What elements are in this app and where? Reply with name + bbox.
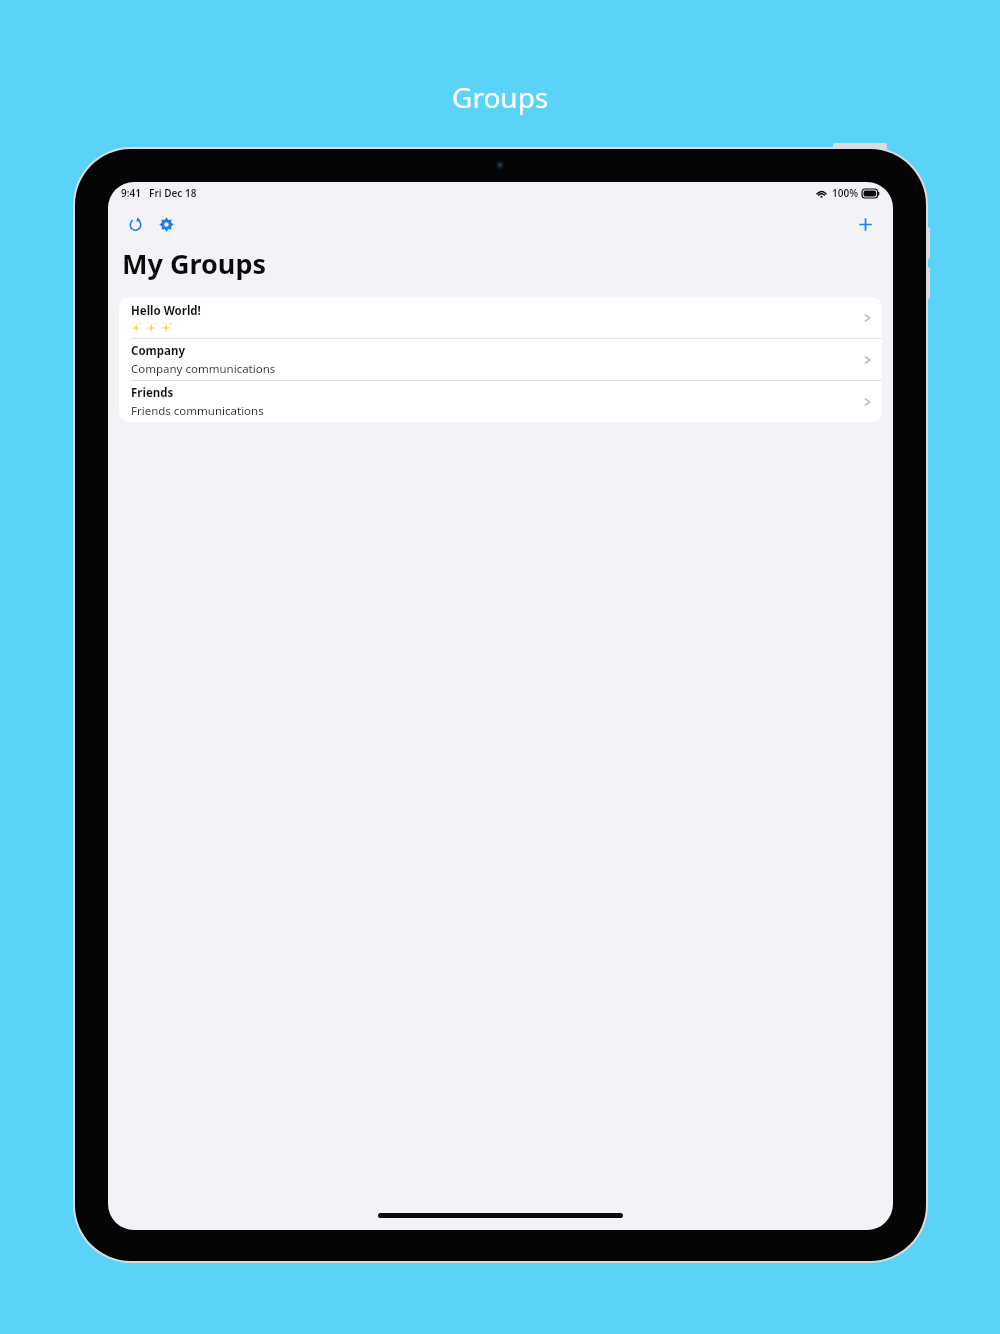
button[interactable]: Add group	[849, 208, 881, 240]
button[interactable]: Friends	[119, 381, 882, 422]
staticText: My Groups	[122, 245, 267, 282]
staticText: 100%	[832, 186, 858, 200]
button[interactable]: Company	[119, 339, 882, 380]
staticText: Friends	[131, 385, 174, 401]
button[interactable]: Hello World!	[119, 297, 882, 338]
staticText: Company communications	[131, 361, 276, 377]
button[interactable]: Refresh	[120, 209, 150, 239]
staticText: Hello World!	[131, 303, 201, 319]
button[interactable]: Settings	[151, 209, 181, 239]
staticText: Friends communications	[131, 403, 264, 419]
staticText: Company	[131, 343, 185, 359]
staticText: Fri Dec 18	[149, 186, 197, 200]
staticText: 9:41	[121, 186, 141, 200]
staticText: Groups	[452, 78, 549, 116]
